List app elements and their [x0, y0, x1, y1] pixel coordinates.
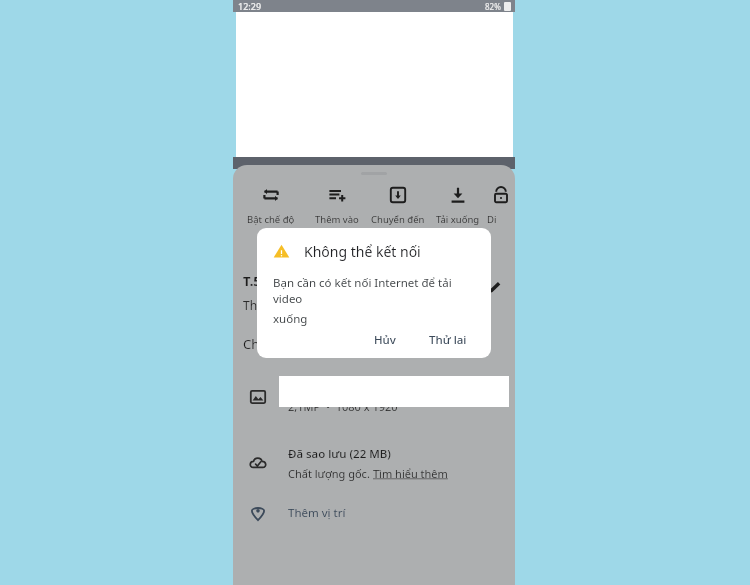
staticText: Chất lượng gốc. [288, 466, 373, 481]
staticText: Bạn cần có kết nối Internet để tải video [273, 275, 477, 307]
button[interactable]: Thêm vào [307, 178, 367, 226]
button[interactable]: Edit [479, 274, 507, 302]
staticText: 12:29 [238, 0, 262, 12]
staticText: Th [243, 297, 258, 313]
staticText: Đã sao lưu (22 MB) [288, 446, 391, 462]
staticText: Tìm hiểu thêm [373, 466, 448, 481]
button[interactable]: Đã sao lưu (22 MB) [245, 446, 515, 481]
staticText: Thử lại [429, 332, 467, 344]
staticText: Bật chế độ [247, 213, 295, 226]
button[interactable]: Chuyển đến [367, 178, 429, 226]
button[interactable]: Thêm vị trí [245, 500, 515, 526]
staticText: 82% [485, 1, 501, 12]
staticText: Chuyển đến [371, 213, 425, 226]
staticText: Chi tiết [243, 335, 287, 353]
button[interactable]: Tải xuống [429, 178, 487, 226]
button[interactable]: Di chu [487, 178, 515, 230]
staticText: Thêm vào [315, 213, 359, 226]
staticText: lặp l [262, 228, 281, 230]
staticText: Tải xuống [436, 213, 480, 226]
staticText: xuống [273, 311, 308, 327]
staticText: Không thể kết nối [304, 242, 421, 261]
staticText: 2,1MP • 1080 x 1920 [288, 399, 398, 414]
staticText: Di chu [487, 213, 515, 226]
staticText: T.5 [243, 272, 261, 290]
staticText: Hủy [374, 332, 396, 344]
staticText: Thêm vị trí [288, 505, 346, 521]
button[interactable]: Thử lại [419, 327, 477, 349]
button[interactable]: Hủy [364, 327, 406, 349]
button[interactable]: Bật chế độ [235, 178, 307, 230]
